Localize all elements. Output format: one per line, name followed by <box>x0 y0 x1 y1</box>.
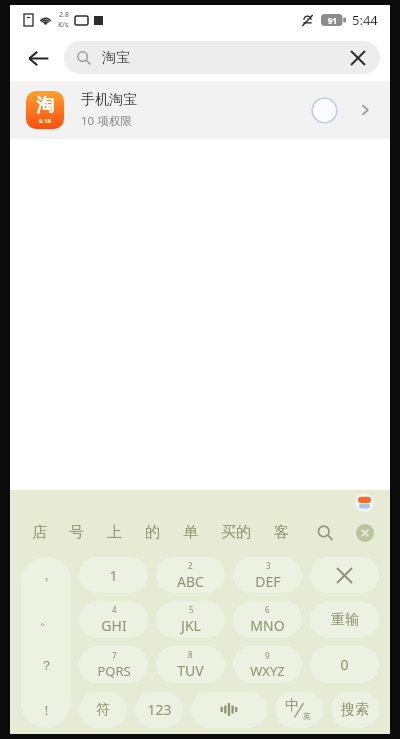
button[interactable]: 123 <box>135 691 183 728</box>
staticText: 6 <box>265 604 270 615</box>
staticText: 店 <box>32 523 47 542</box>
button[interactable]: 5 <box>156 601 225 638</box>
button[interactable]: Delete <box>310 557 379 593</box>
button[interactable]: Select app <box>311 97 338 124</box>
staticText: 5 <box>189 604 194 615</box>
staticText: JKL <box>181 616 201 635</box>
staticText: 中 <box>285 697 299 715</box>
button[interactable]: 淘宝 <box>64 41 380 74</box>
button[interactable]: Close <box>354 522 376 544</box>
button[interactable]: Assistant <box>355 493 374 512</box>
button[interactable]: 的 <box>145 523 160 542</box>
staticText: 0 <box>340 655 349 674</box>
staticText: DEF <box>255 572 281 591</box>
staticText: GHI <box>101 616 127 635</box>
staticText: 2 <box>188 560 193 571</box>
staticText: 上 <box>107 523 122 542</box>
staticText: 客 <box>274 523 289 542</box>
button[interactable]: 9 <box>233 646 302 683</box>
staticText: 的 <box>145 523 160 542</box>
staticText: 符 <box>96 701 110 719</box>
button[interactable]: 4 <box>79 601 148 638</box>
button[interactable]: 符 <box>79 691 127 728</box>
button[interactable]: 号 <box>69 523 84 542</box>
staticText: 3 <box>266 560 271 571</box>
staticText: 10 项权限 <box>81 113 132 129</box>
button[interactable]: 重输 <box>310 601 379 638</box>
staticText: 2.8 <box>59 10 69 20</box>
staticText: TUV <box>177 661 204 680</box>
button[interactable]: 2 <box>156 557 225 593</box>
staticText: 搜索 <box>341 701 369 719</box>
staticText: ABC <box>177 572 204 591</box>
button[interactable]: Search <box>312 520 338 546</box>
staticText: 淘 <box>36 94 54 117</box>
button[interactable]: 客 <box>274 523 289 542</box>
button[interactable]: 搜索 <box>331 691 379 728</box>
staticText: 7 <box>112 650 117 661</box>
staticText: 9 <box>265 650 270 661</box>
button[interactable]: 淘 <box>10 81 390 139</box>
staticText: WXYZ <box>250 662 285 680</box>
button[interactable]: Clear <box>344 44 372 72</box>
staticText: 买的 <box>221 523 251 542</box>
button[interactable]: 3 <box>233 557 302 593</box>
staticText: 8 <box>188 649 193 660</box>
staticText: 淘宝 <box>102 49 130 67</box>
staticText: K/s <box>58 20 69 30</box>
button[interactable]: Open details <box>354 99 376 121</box>
staticText: 号 <box>69 523 84 542</box>
staticText: 91 <box>328 15 338 26</box>
button[interactable]: 买的 <box>221 523 251 542</box>
staticText: 6.18 <box>39 117 51 125</box>
staticText: 5:44 <box>352 11 378 29</box>
staticText: 单 <box>183 523 198 542</box>
button[interactable]: ， <box>21 557 71 728</box>
button[interactable]: Switch language <box>275 691 323 728</box>
staticText: ！ <box>40 702 53 718</box>
staticText: 英 <box>303 711 311 721</box>
staticText: 1 <box>109 566 118 585</box>
button[interactable]: 上 <box>107 523 122 542</box>
staticText: 4 <box>112 604 117 615</box>
staticText: 重输 <box>331 611 359 629</box>
button[interactable]: Back <box>18 38 58 78</box>
button[interactable]: 7 <box>79 646 148 683</box>
button[interactable]: 店 <box>32 523 47 542</box>
staticText: MNO <box>250 616 285 635</box>
staticText: ， <box>40 567 53 583</box>
button[interactable]: 1 <box>79 557 148 593</box>
button[interactable]: 8 <box>156 646 225 683</box>
staticText: 123 <box>147 700 172 719</box>
staticText: ？ <box>40 657 53 673</box>
button[interactable]: 0 <box>310 646 379 683</box>
button[interactable]: Voice input <box>191 691 267 728</box>
button[interactable]: 6 <box>233 601 302 638</box>
staticText: 。 <box>40 612 53 628</box>
button[interactable]: 单 <box>183 523 198 542</box>
staticText: PQRS <box>97 662 131 680</box>
staticText: 手机淘宝 <box>81 91 137 109</box>
